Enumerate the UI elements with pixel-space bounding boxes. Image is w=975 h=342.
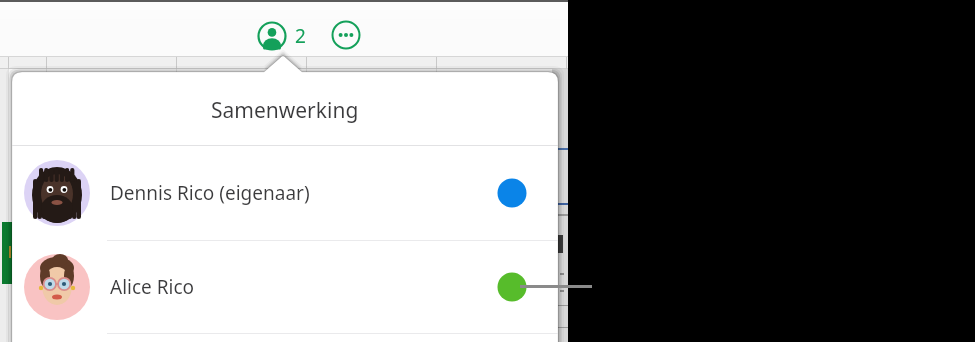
- button[interactable]: [12, 241, 558, 333]
- button[interactable]: [12, 146, 558, 240]
- button[interactable]: Collaborators, 2 people: [250, 18, 312, 56]
- button[interactable]: More options: [327, 18, 365, 56]
